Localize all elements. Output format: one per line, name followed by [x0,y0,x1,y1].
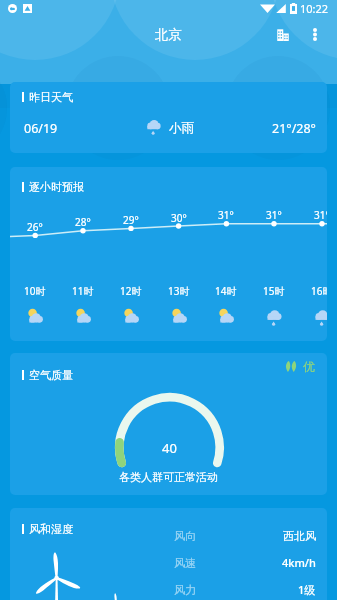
staticText: 13时 [168,284,190,298]
staticText: 16时 [311,284,327,298]
staticText: 31° [218,208,234,222]
staticText: 1级 [298,582,316,597]
staticText: 29° [123,213,139,227]
button[interactable]: More options [300,20,330,48]
staticText: 28° [75,215,91,229]
staticText: 西北风 [283,529,316,543]
staticText: 14时 [215,284,237,298]
button[interactable]: 空气质量 [10,353,327,495]
staticText: 12时 [120,284,142,298]
staticText: 31° [266,208,282,222]
staticText: 小雨 [169,120,194,136]
staticText: 11时 [72,284,94,298]
staticText: 4km/h [282,555,316,570]
staticText: 逐小时预报 [29,180,84,194]
staticText: 昨日天气 [29,90,73,104]
staticText: 北京 [155,26,182,43]
staticText: 21°/28° [272,120,316,137]
staticText: 30° [171,211,187,225]
staticText: 06/19 [24,120,58,137]
staticText: 15时 [263,284,285,298]
staticText: 31° [314,208,327,222]
button[interactable]: 风和湿度 [10,508,327,600]
staticText: 40 [162,439,177,457]
staticText: 空气质量 [29,368,73,382]
button[interactable]: 昨日天气 [10,82,327,153]
button[interactable]: 逐小时预报 [10,167,327,341]
staticText: 10:22 [300,1,329,16]
staticText: 风和湿度 [29,522,73,536]
staticText: 10时 [24,284,46,298]
staticText: 各类人群可正常活动 [119,470,218,484]
staticText: 26° [27,220,43,234]
staticText: 风力 [174,583,196,597]
staticText: 优 [303,359,315,374]
staticText: 风速 [174,556,196,570]
staticText: 风向 [174,529,196,543]
button[interactable]: Cities [266,20,300,48]
